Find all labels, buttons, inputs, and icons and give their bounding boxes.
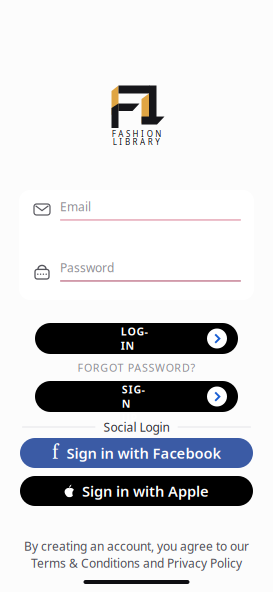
button[interactable]: LOGIN bbox=[35, 323, 238, 354]
staticText: FASHION bbox=[112, 129, 161, 139]
staticText: By creating an account, you agree to our bbox=[24, 538, 249, 554]
staticText: SIGN UP bbox=[122, 382, 151, 411]
staticText: Email bbox=[60, 198, 91, 214]
staticText: f bbox=[52, 440, 59, 466]
staticText: FORGOT PASSWORD? bbox=[77, 360, 195, 375]
staticText: Terms & Conditions and Privacy Policy bbox=[31, 555, 242, 571]
button[interactable]: SIGN UP bbox=[35, 381, 238, 412]
button[interactable]: Sign in with Apple bbox=[20, 476, 253, 506]
button[interactable]: FORGOT PASSWORD? bbox=[46, 360, 226, 375]
staticText: Sign in with Facebook bbox=[66, 443, 221, 463]
staticText: Password bbox=[60, 259, 114, 275]
staticText: LIBRARY bbox=[113, 137, 160, 147]
button[interactable]: f bbox=[20, 438, 253, 468]
staticText: Sign in with Apple bbox=[82, 481, 209, 501]
staticText: Social Login bbox=[103, 419, 169, 435]
staticText: LOGIN bbox=[121, 324, 152, 353]
